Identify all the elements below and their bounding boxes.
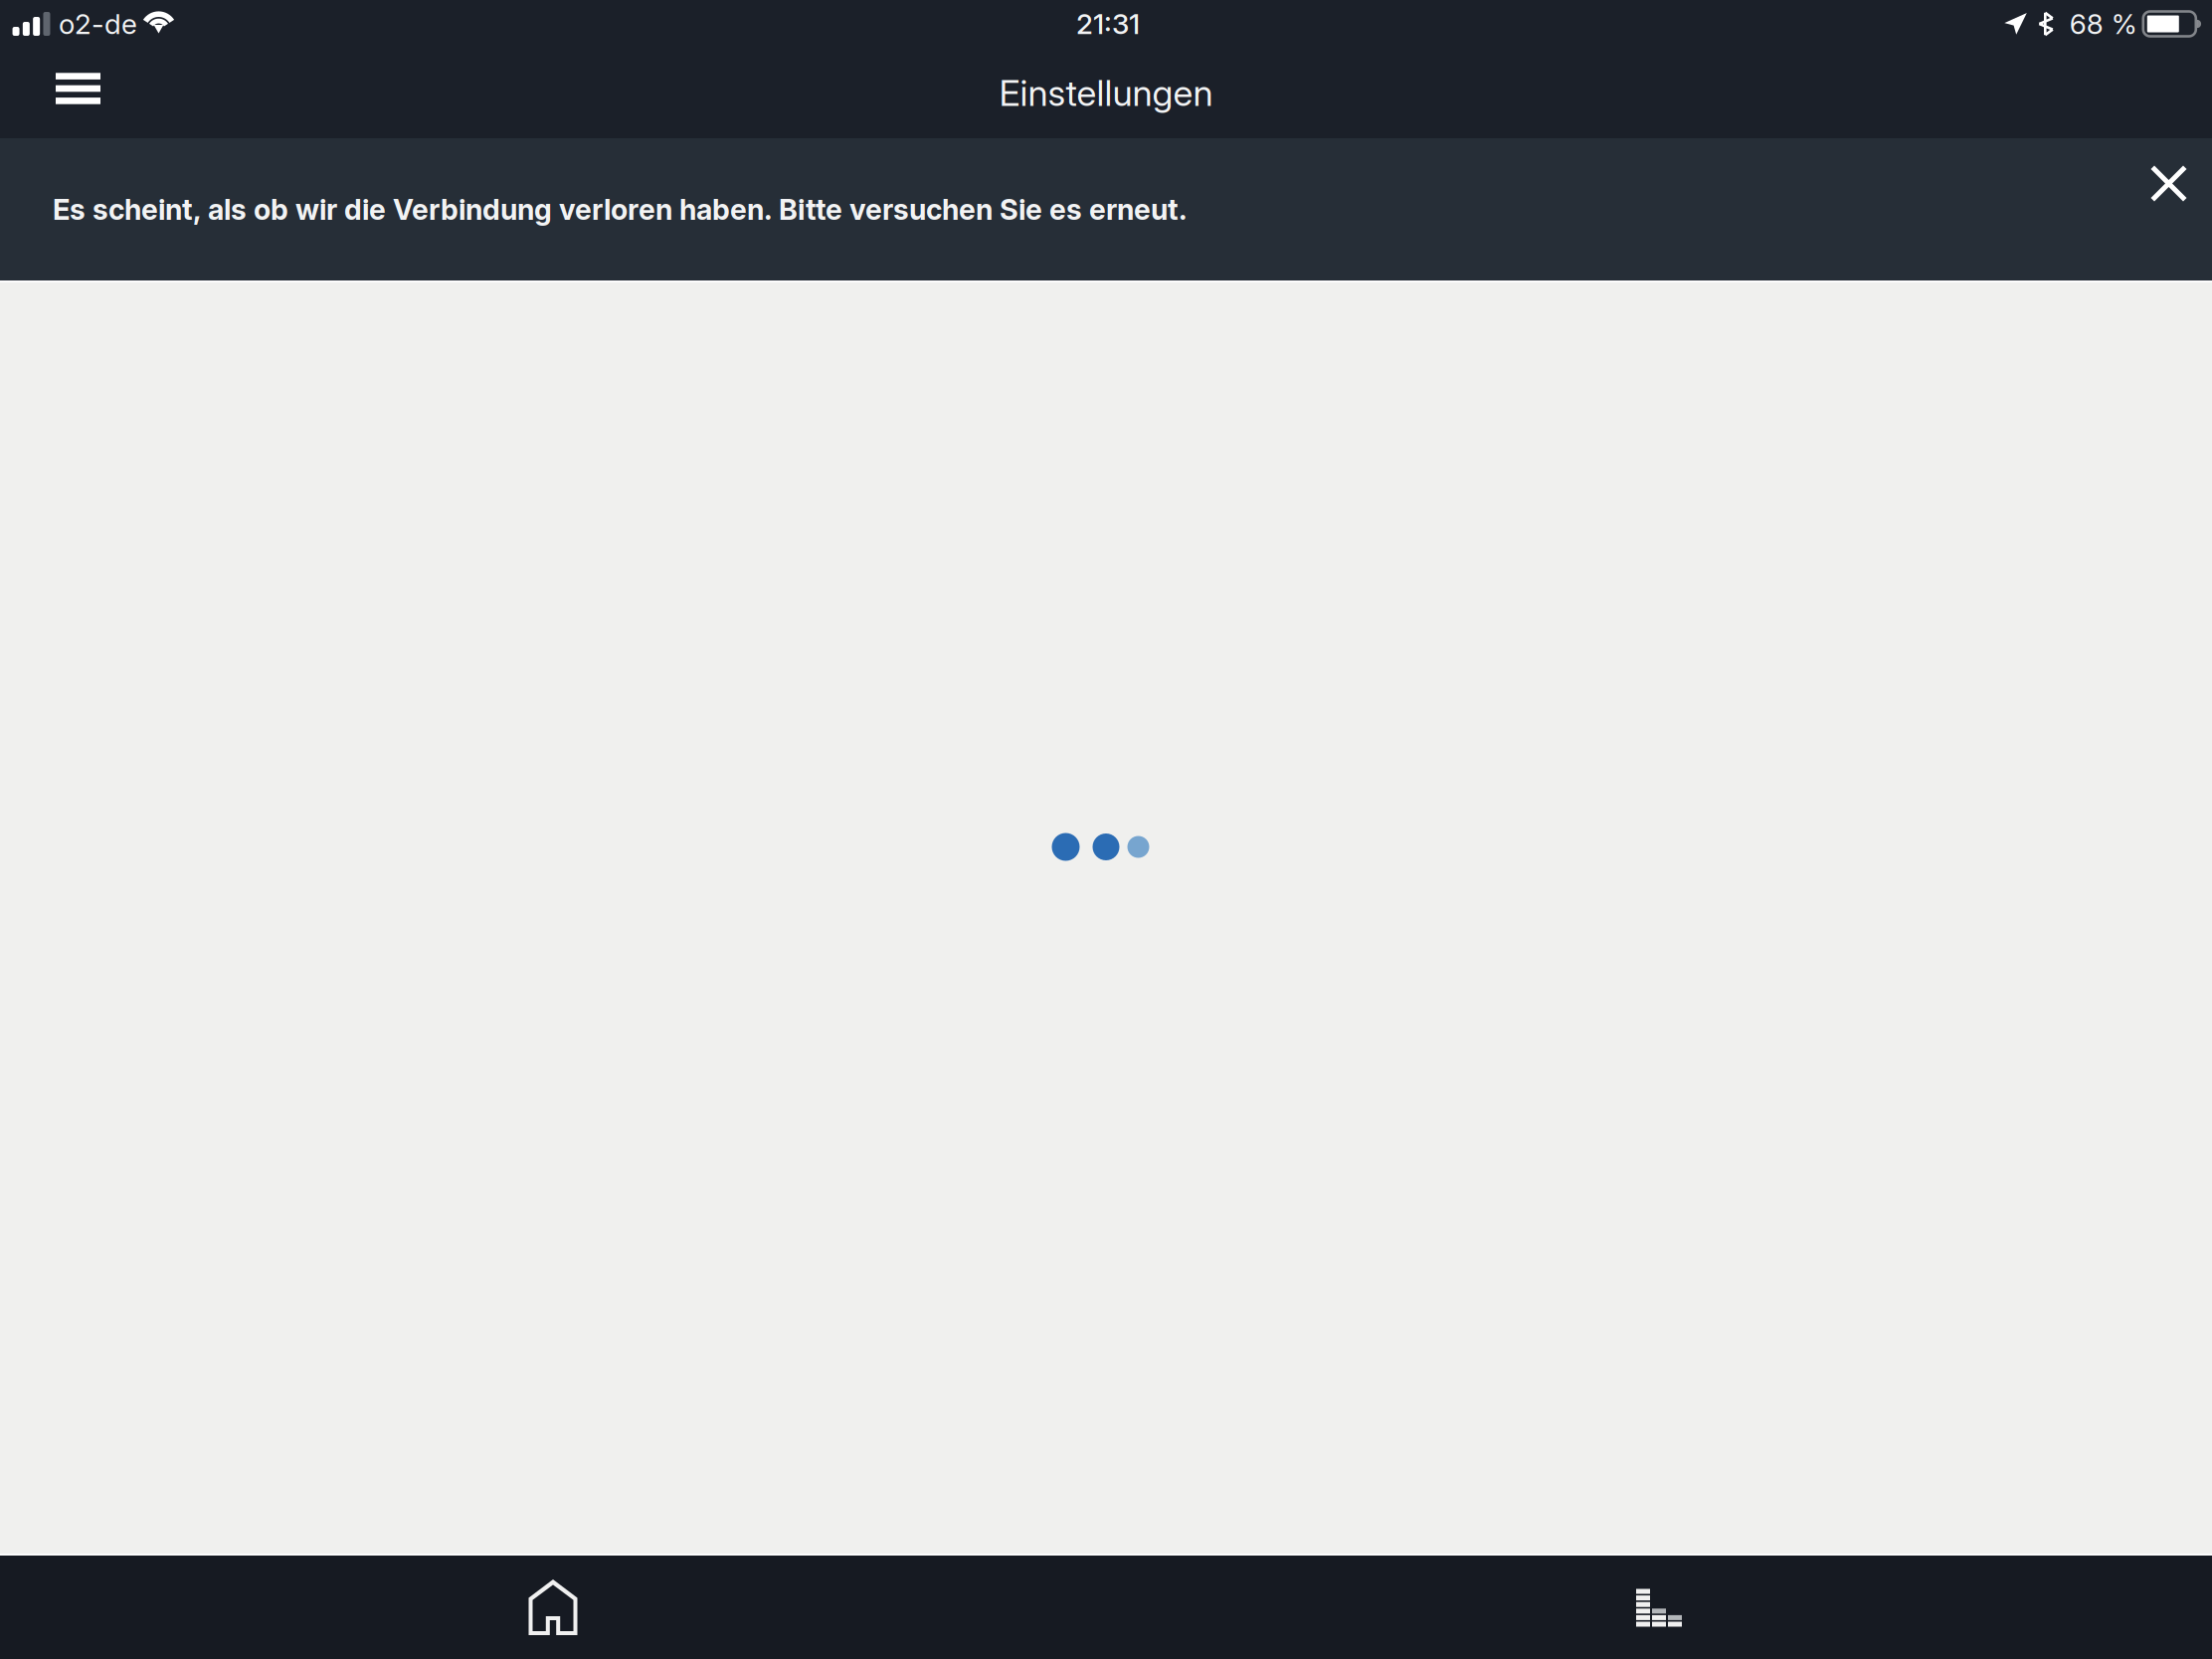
staticText: 68 % [2070, 7, 2137, 41]
button[interactable]: Close [2150, 138, 2212, 280]
button[interactable]: Menu [0, 48, 100, 138]
button[interactable]: Charts [1106, 1556, 2212, 1659]
staticText: Einstellungen [999, 71, 1213, 115]
staticText: o2-de [59, 7, 137, 41]
button[interactable]: Home [0, 1556, 1106, 1659]
staticText: 21:31 [1076, 7, 1140, 41]
staticText: Es scheint, als ob wir die Verbindung ve… [53, 192, 1188, 227]
